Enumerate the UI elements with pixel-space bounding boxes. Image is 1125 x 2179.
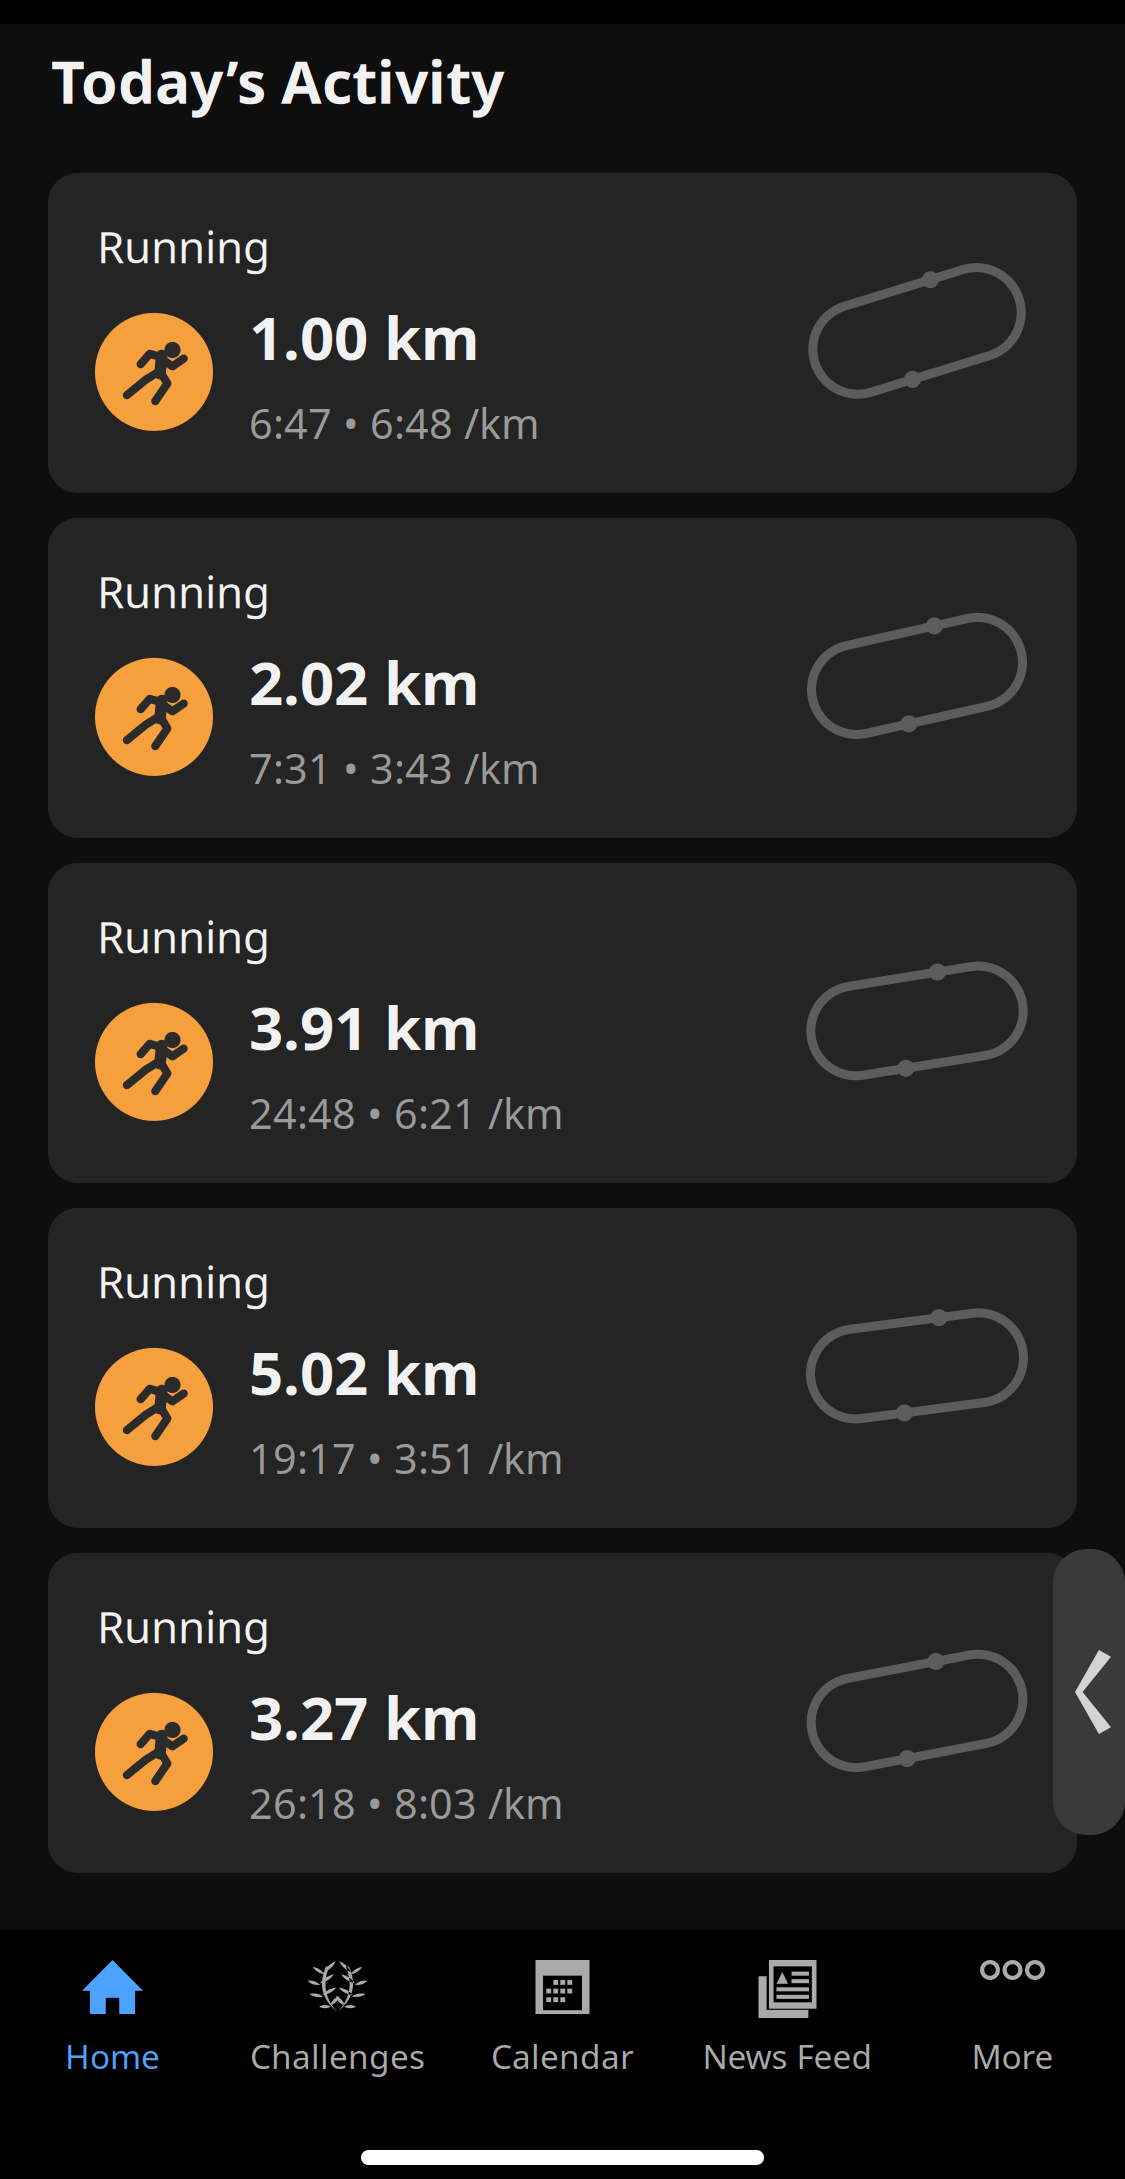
button[interactable]: Running <box>48 173 1077 493</box>
staticText: Running <box>97 1252 270 1310</box>
button[interactable]: Running <box>48 1208 1077 1528</box>
staticText: 24:48 • 6:21 /km <box>249 1086 564 1140</box>
staticText: More <box>971 2034 1053 2078</box>
staticText: 3.27 km <box>249 1677 480 1757</box>
button[interactable]: Running <box>48 518 1077 838</box>
button[interactable]: Running <box>48 863 1077 1183</box>
button[interactable]: More <box>900 1930 1125 2080</box>
button[interactable]: Home <box>0 1930 225 2080</box>
button[interactable]: Calendar <box>450 1930 675 2080</box>
staticText: Running <box>97 1597 270 1655</box>
button[interactable]: Challenges <box>225 1930 450 2080</box>
staticText: Running <box>97 907 270 965</box>
staticText: 3.91 km <box>249 987 480 1067</box>
button[interactable]: Running <box>48 1553 1077 1873</box>
button[interactable]: News Feed <box>675 1930 900 2080</box>
button[interactable]: Open panel <box>1053 1549 1125 1835</box>
staticText: Home <box>65 2034 160 2078</box>
staticText: 7:31 • 3:43 /km <box>249 741 540 795</box>
staticText: Today’s Activity <box>51 42 504 120</box>
staticText: 19:17 • 3:51 /km <box>249 1431 564 1485</box>
staticText: 1.00 km <box>249 297 480 377</box>
staticText: 6:47 • 6:48 /km <box>249 396 540 450</box>
staticText: News Feed <box>702 2034 872 2078</box>
staticText: 26:18 • 8:03 /km <box>249 1776 564 1830</box>
staticText: Running <box>97 217 270 275</box>
staticText: Calendar <box>491 2034 634 2078</box>
staticText: Challenges <box>250 2034 425 2078</box>
staticText: Running <box>97 562 270 620</box>
staticText: 2.02 km <box>249 642 480 722</box>
staticText: 5.02 km <box>249 1332 480 1412</box>
